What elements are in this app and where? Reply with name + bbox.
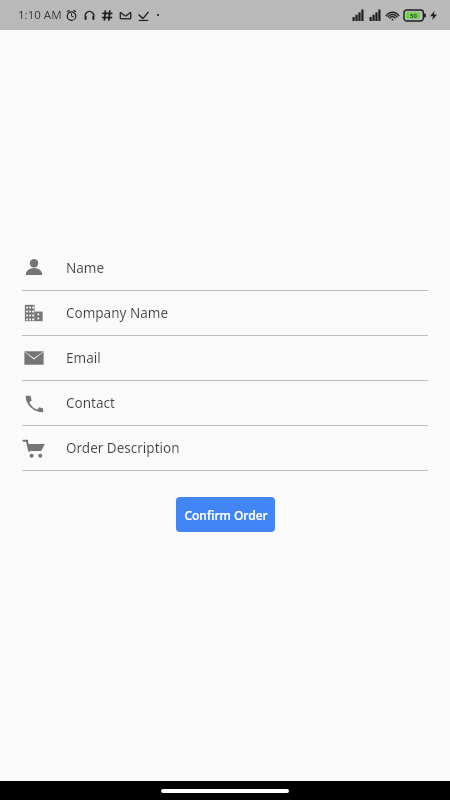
staticText: Confirm Order	[184, 507, 268, 523]
button[interactable]: Confirm Order	[176, 497, 275, 532]
button[interactable]: Email	[0, 336, 450, 380]
button[interactable]: Order Description	[0, 426, 450, 470]
staticText: Contact	[66, 394, 115, 412]
staticText: Company Name	[66, 304, 169, 322]
staticText: 50	[410, 12, 417, 20]
other: Home gesture handle	[161, 789, 289, 793]
staticText: 1:10 AM	[18, 7, 62, 23]
button[interactable]: Contact	[0, 381, 450, 425]
button[interactable]: Company Name	[0, 291, 450, 335]
staticText: Order Description	[66, 439, 180, 457]
staticText: Email	[66, 349, 101, 367]
button[interactable]: Name	[0, 246, 450, 290]
staticText: Name	[66, 259, 105, 277]
